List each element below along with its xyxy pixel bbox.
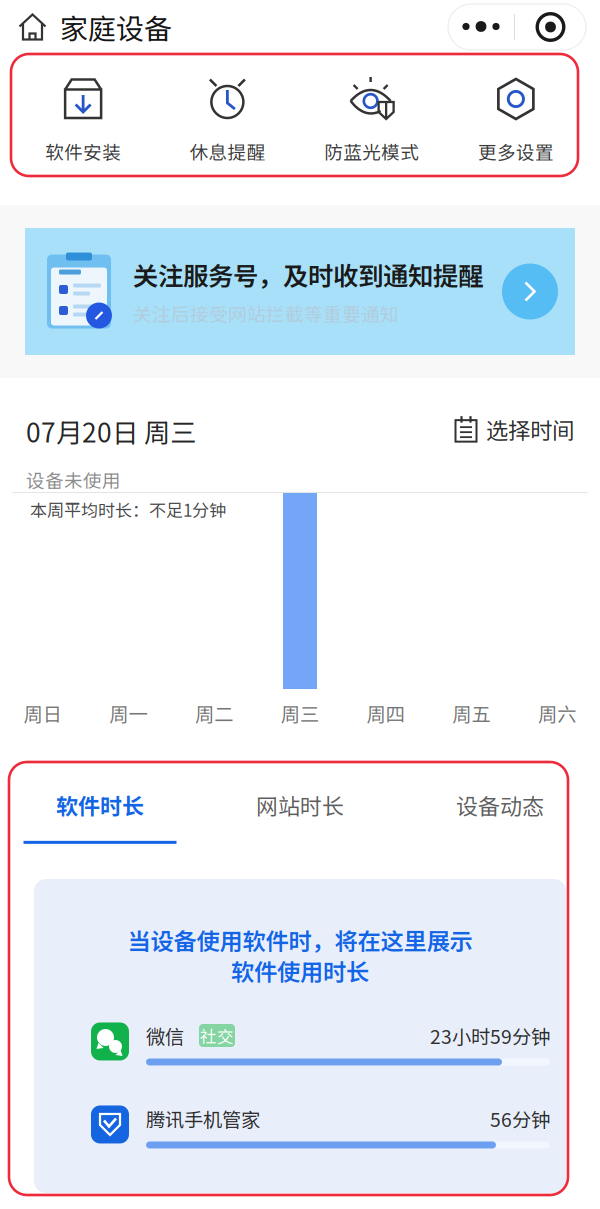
staticText: 防蓝光模式	[324, 138, 419, 165]
staticText: 设备未使用	[26, 466, 121, 493]
staticText: 软件安装	[45, 138, 121, 165]
button[interactable]: 选择时间	[454, 412, 574, 445]
staticText: 软件使用时长	[231, 954, 369, 987]
button[interactable]: Close	[515, 4, 586, 50]
staticText: 关注后接受网站拦截等重要通知	[133, 300, 399, 327]
button[interactable]: 关注服务号，及时收到通知提醒	[25, 228, 575, 355]
button[interactable]: 软件安装	[11, 54, 155, 165]
staticText: 本周平均时长：不足1分钟	[30, 497, 226, 522]
button[interactable]: 防蓝光模式	[299, 54, 444, 165]
button[interactable]: 网站时长	[200, 789, 400, 844]
staticText: 07月20日 周三	[26, 412, 196, 450]
staticText: 更多设置	[478, 138, 554, 165]
staticText: 社交	[200, 1023, 234, 1047]
staticText: 家庭设备	[60, 7, 172, 47]
button[interactable]: More	[448, 4, 514, 50]
staticText: 周四	[367, 699, 405, 727]
button[interactable]: 家庭设备	[0, 0, 172, 55]
staticText: 周五	[452, 699, 490, 727]
staticText: 微信	[146, 1021, 184, 1049]
staticText: 周三	[281, 699, 319, 727]
staticText: 关注服务号，及时收到通知提醒	[133, 256, 483, 293]
button[interactable]: 更多设置	[444, 54, 588, 165]
staticText: 周二	[195, 699, 233, 727]
button[interactable]: 休息提醒	[155, 54, 299, 165]
staticText: 设备动态	[456, 789, 544, 821]
staticText: 选择时间	[486, 413, 574, 445]
staticText: 周一	[110, 699, 148, 727]
staticText: 23小时59分钟	[430, 1021, 550, 1049]
staticText: 56分钟	[490, 1104, 550, 1132]
staticText: 周六	[538, 699, 576, 727]
staticText: 周日	[24, 699, 62, 727]
staticText: 当设备使用软件时，将在这里展示	[127, 923, 472, 957]
staticText: 软件时长	[56, 789, 144, 821]
staticText: 网站时长	[256, 789, 344, 821]
button[interactable]: 软件时长	[0, 789, 200, 844]
button[interactable]: 设备动态	[400, 789, 600, 844]
staticText: 休息提醒	[189, 138, 265, 165]
staticText: 腾讯手机管家	[146, 1104, 260, 1132]
